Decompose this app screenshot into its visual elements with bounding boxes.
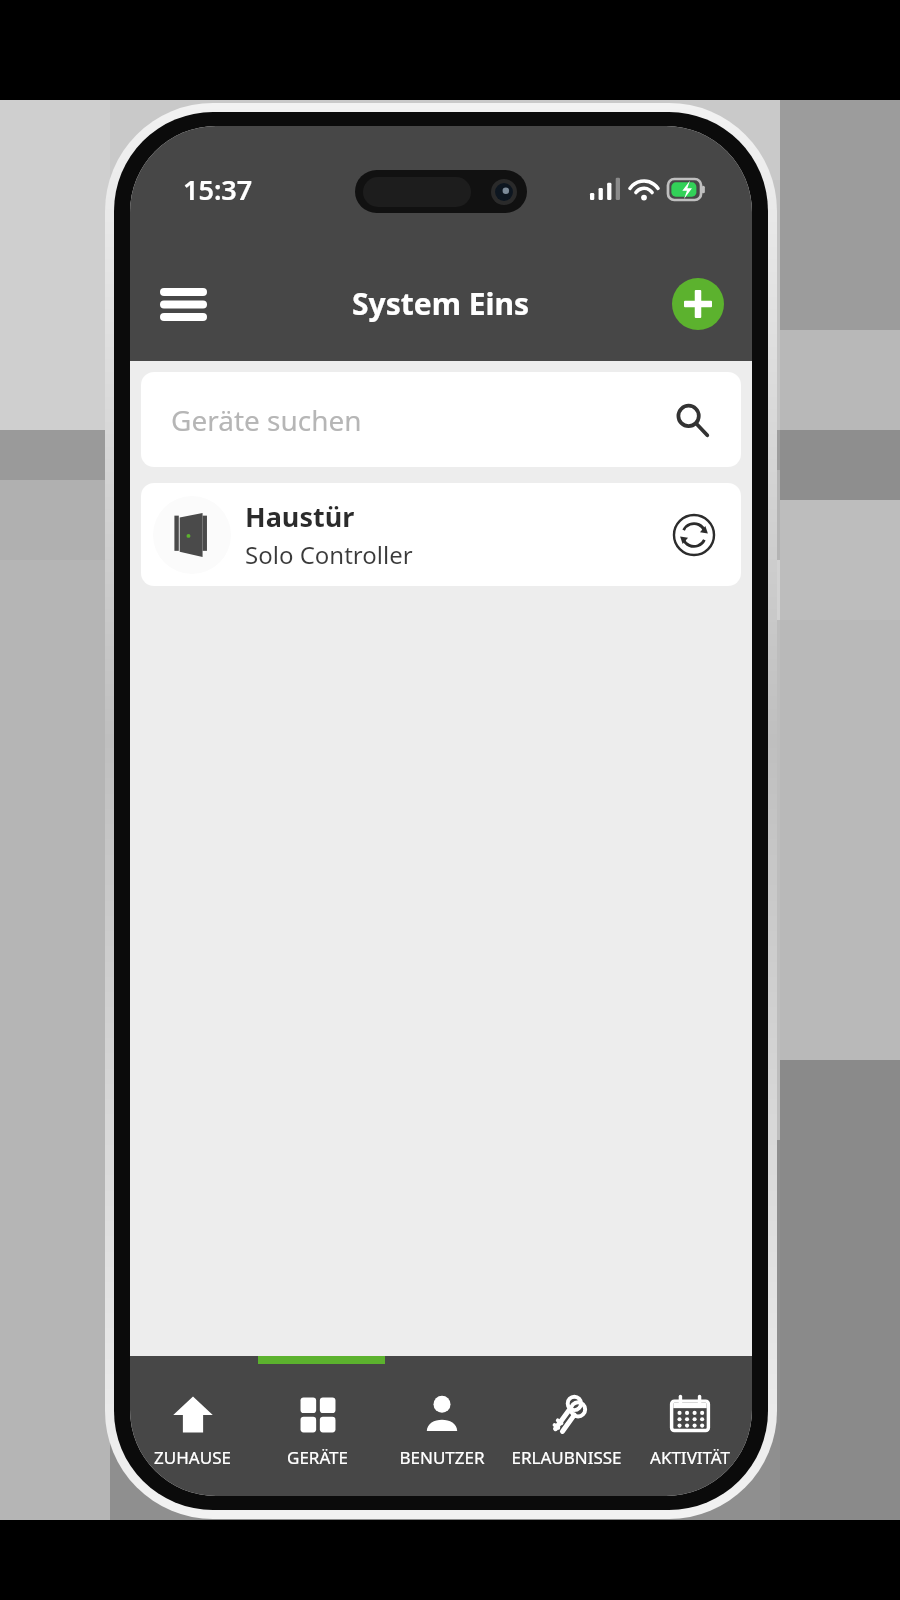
button[interactable]: Geräte suchen: [141, 372, 741, 467]
button[interactable]: Synchronisieren: [669, 510, 719, 560]
button[interactable]: Menü: [150, 271, 216, 337]
staticText: ERLAUBNISSE: [511, 1446, 622, 1469]
staticText: ZUHAUSE: [154, 1446, 231, 1469]
button[interactable]: BENUTZER: [380, 1356, 504, 1496]
button[interactable]: GERÄTE: [255, 1356, 380, 1496]
staticText: AKTIVITÄT: [650, 1446, 730, 1469]
staticText: Geräte suchen: [171, 401, 362, 439]
button[interactable]: Haustür: [141, 483, 741, 586]
staticText: 15:37: [183, 171, 253, 208]
button[interactable]: ZUHAUSE: [130, 1356, 255, 1496]
button[interactable]: Gerät hinzufügen: [672, 278, 724, 330]
staticText: BENUTZER: [399, 1446, 485, 1469]
staticText: System Eins: [352, 283, 530, 324]
staticText: GERÄTE: [287, 1446, 348, 1469]
staticText: Haustür: [245, 498, 355, 535]
staticText: Solo Controller: [245, 538, 413, 571]
button[interactable]: AKTIVITÄT: [628, 1356, 752, 1496]
button[interactable]: ERLAUBNISSE: [504, 1356, 628, 1496]
